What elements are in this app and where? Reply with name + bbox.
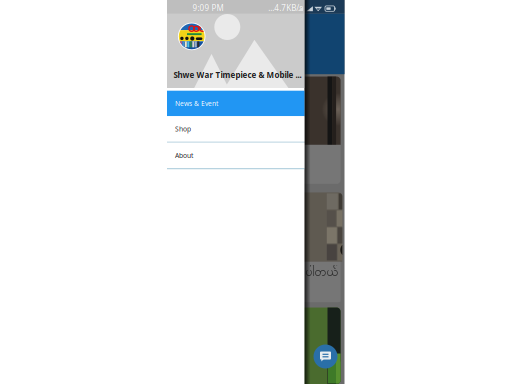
staticText: ...4.7KB/s: [268, 3, 303, 13]
button[interactable]: New message: [313, 344, 337, 368]
button[interactable]: About: [167, 143, 305, 168]
staticText: ပါတယ်: [305, 264, 338, 282]
button[interactable]: Shop: [167, 116, 305, 142]
staticText: Shwe War Timepiece & Mobile ...: [173, 69, 301, 80]
staticText: News & Event: [175, 99, 218, 108]
button[interactable]: News & Event: [167, 91, 305, 116]
staticText: About: [175, 151, 193, 160]
staticText: 9:09 PM: [192, 3, 223, 13]
staticText: Shop: [175, 124, 191, 133]
